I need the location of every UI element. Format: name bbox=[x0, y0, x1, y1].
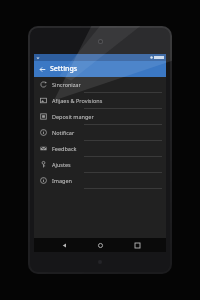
button[interactable]: Imagen bbox=[34, 173, 166, 189]
button[interactable]: Home bbox=[93, 238, 107, 252]
button[interactable]: Feedback bbox=[34, 141, 166, 157]
staticText: Ajustes bbox=[52, 161, 71, 168]
button[interactable]: Notificar bbox=[34, 125, 166, 141]
button[interactable]: Afijaes & Provisions bbox=[34, 93, 166, 109]
button[interactable]: Navigate up bbox=[34, 61, 50, 77]
staticText: Sincronizar bbox=[52, 81, 81, 88]
staticText: Deposit manger bbox=[52, 113, 94, 120]
staticText: Imagen bbox=[52, 177, 72, 184]
staticText: Notificar bbox=[52, 129, 75, 136]
button[interactable]: Back bbox=[57, 238, 71, 252]
staticText: Afijaes & Provisions bbox=[52, 97, 103, 104]
button[interactable]: Recent apps bbox=[130, 238, 144, 252]
button[interactable]: Ajustes bbox=[34, 157, 166, 173]
staticText: Settings bbox=[50, 64, 78, 74]
button[interactable]: Deposit manger bbox=[34, 109, 166, 125]
button[interactable]: Sincronizar bbox=[34, 77, 166, 93]
staticText: Feedback bbox=[52, 145, 77, 152]
